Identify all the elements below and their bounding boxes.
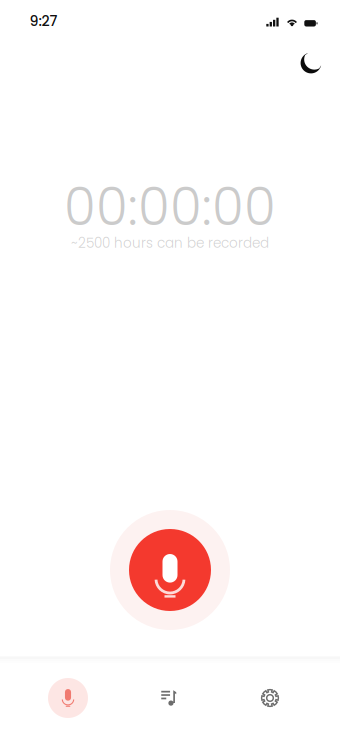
staticText: ~2500 hours can be recorded (71, 233, 269, 252)
button[interactable]: Dark mode (292, 44, 332, 84)
button[interactable]: Settings (232, 670, 308, 726)
button[interactable]: Start recording (110, 510, 230, 630)
button[interactable]: Record (30, 670, 106, 726)
button[interactable]: Recordings (131, 670, 207, 726)
staticText: 00:00:00 (64, 171, 276, 243)
staticText: 9:27 (29, 11, 57, 31)
